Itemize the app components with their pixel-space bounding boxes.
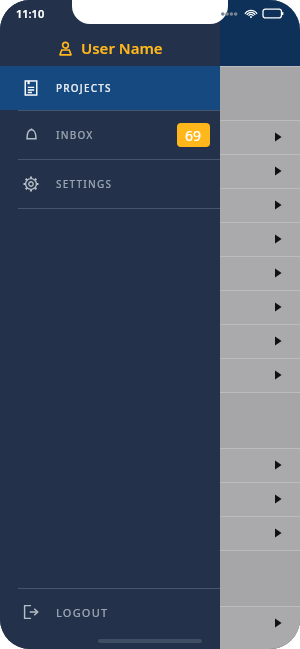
button[interactable]: Expand [220, 188, 300, 222]
other: Expand [272, 459, 284, 471]
button[interactable]: Expand [220, 256, 300, 290]
other: Expand [272, 233, 284, 245]
button[interactable]: User Name [0, 30, 220, 66]
button[interactable]: Expand [220, 154, 300, 188]
button[interactable]: Expand [220, 482, 300, 516]
other: Expand [272, 617, 284, 629]
other: Expand [272, 335, 284, 347]
button[interactable]: INBOX [0, 111, 220, 159]
other: Expand [272, 131, 284, 143]
button[interactable]: PROJECTS [0, 66, 220, 110]
button[interactable]: Expand [220, 516, 300, 550]
button[interactable]: Expand [220, 290, 300, 324]
staticText: PROJECTS [56, 81, 112, 95]
button[interactable]: Expand [220, 606, 300, 640]
button[interactable]: SETTINGS [0, 160, 220, 208]
other: Expand [272, 165, 284, 177]
other: Expand [272, 267, 284, 279]
button[interactable]: LOGOUT [0, 589, 220, 635]
button[interactable]: Expand [220, 222, 300, 256]
other: Expand [272, 199, 284, 211]
other: Expand [272, 527, 284, 539]
button[interactable]: Expand [220, 120, 300, 154]
other: Expand [272, 369, 284, 381]
button[interactable]: Expand [220, 324, 300, 358]
other: Expand [272, 301, 284, 313]
staticText: 11:10 [16, 6, 45, 21]
staticText: LOGOUT [56, 605, 109, 620]
staticText: User Name [81, 38, 163, 58]
other: Expand [272, 493, 284, 505]
staticText: INBOX [56, 128, 94, 142]
staticText: 69 [185, 126, 202, 145]
button[interactable]: Expand [220, 358, 300, 392]
button[interactable]: Expand [220, 448, 300, 482]
staticText: SETTINGS [56, 177, 113, 191]
